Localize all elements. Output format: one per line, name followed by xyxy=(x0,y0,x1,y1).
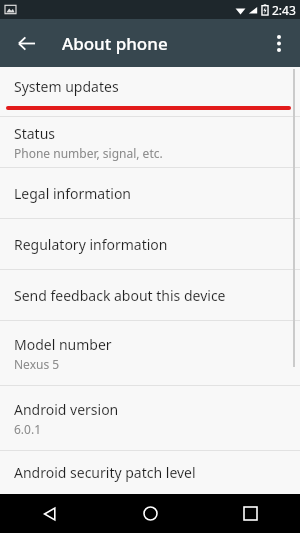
button[interactable]: Model number xyxy=(0,321,300,385)
staticText: 2:43 xyxy=(272,2,296,18)
staticText: Send feedback about this device xyxy=(14,286,226,305)
staticText: 6.0.1 xyxy=(14,421,42,437)
button[interactable]: Recent apps xyxy=(200,494,300,533)
staticText: Android security patch level xyxy=(14,463,196,482)
button[interactable]: Regulatory information xyxy=(0,219,300,269)
staticText: Nexus 5 xyxy=(14,356,60,372)
staticText: Android version xyxy=(14,400,119,419)
staticText: Status xyxy=(14,124,56,143)
button[interactable]: Back xyxy=(0,494,100,533)
staticText: About phone xyxy=(62,32,168,55)
button[interactable]: Status xyxy=(0,117,300,167)
button[interactable]: Legal information xyxy=(0,168,300,218)
button[interactable]: Home xyxy=(100,494,200,533)
staticText: Regulatory information xyxy=(14,235,168,254)
staticText: System updates xyxy=(14,77,119,96)
button[interactable]: System updates xyxy=(0,67,300,105)
button[interactable]: Android security patch level xyxy=(0,451,300,494)
button[interactable]: Send feedback about this device xyxy=(0,270,300,320)
button[interactable]: Navigate up xyxy=(8,25,44,61)
button[interactable]: More options xyxy=(261,25,297,61)
staticText: Phone number, signal, etc. xyxy=(14,145,163,161)
button[interactable]: Android version xyxy=(0,386,300,450)
staticText: Legal information xyxy=(14,184,132,203)
staticText: Model number xyxy=(14,335,112,354)
